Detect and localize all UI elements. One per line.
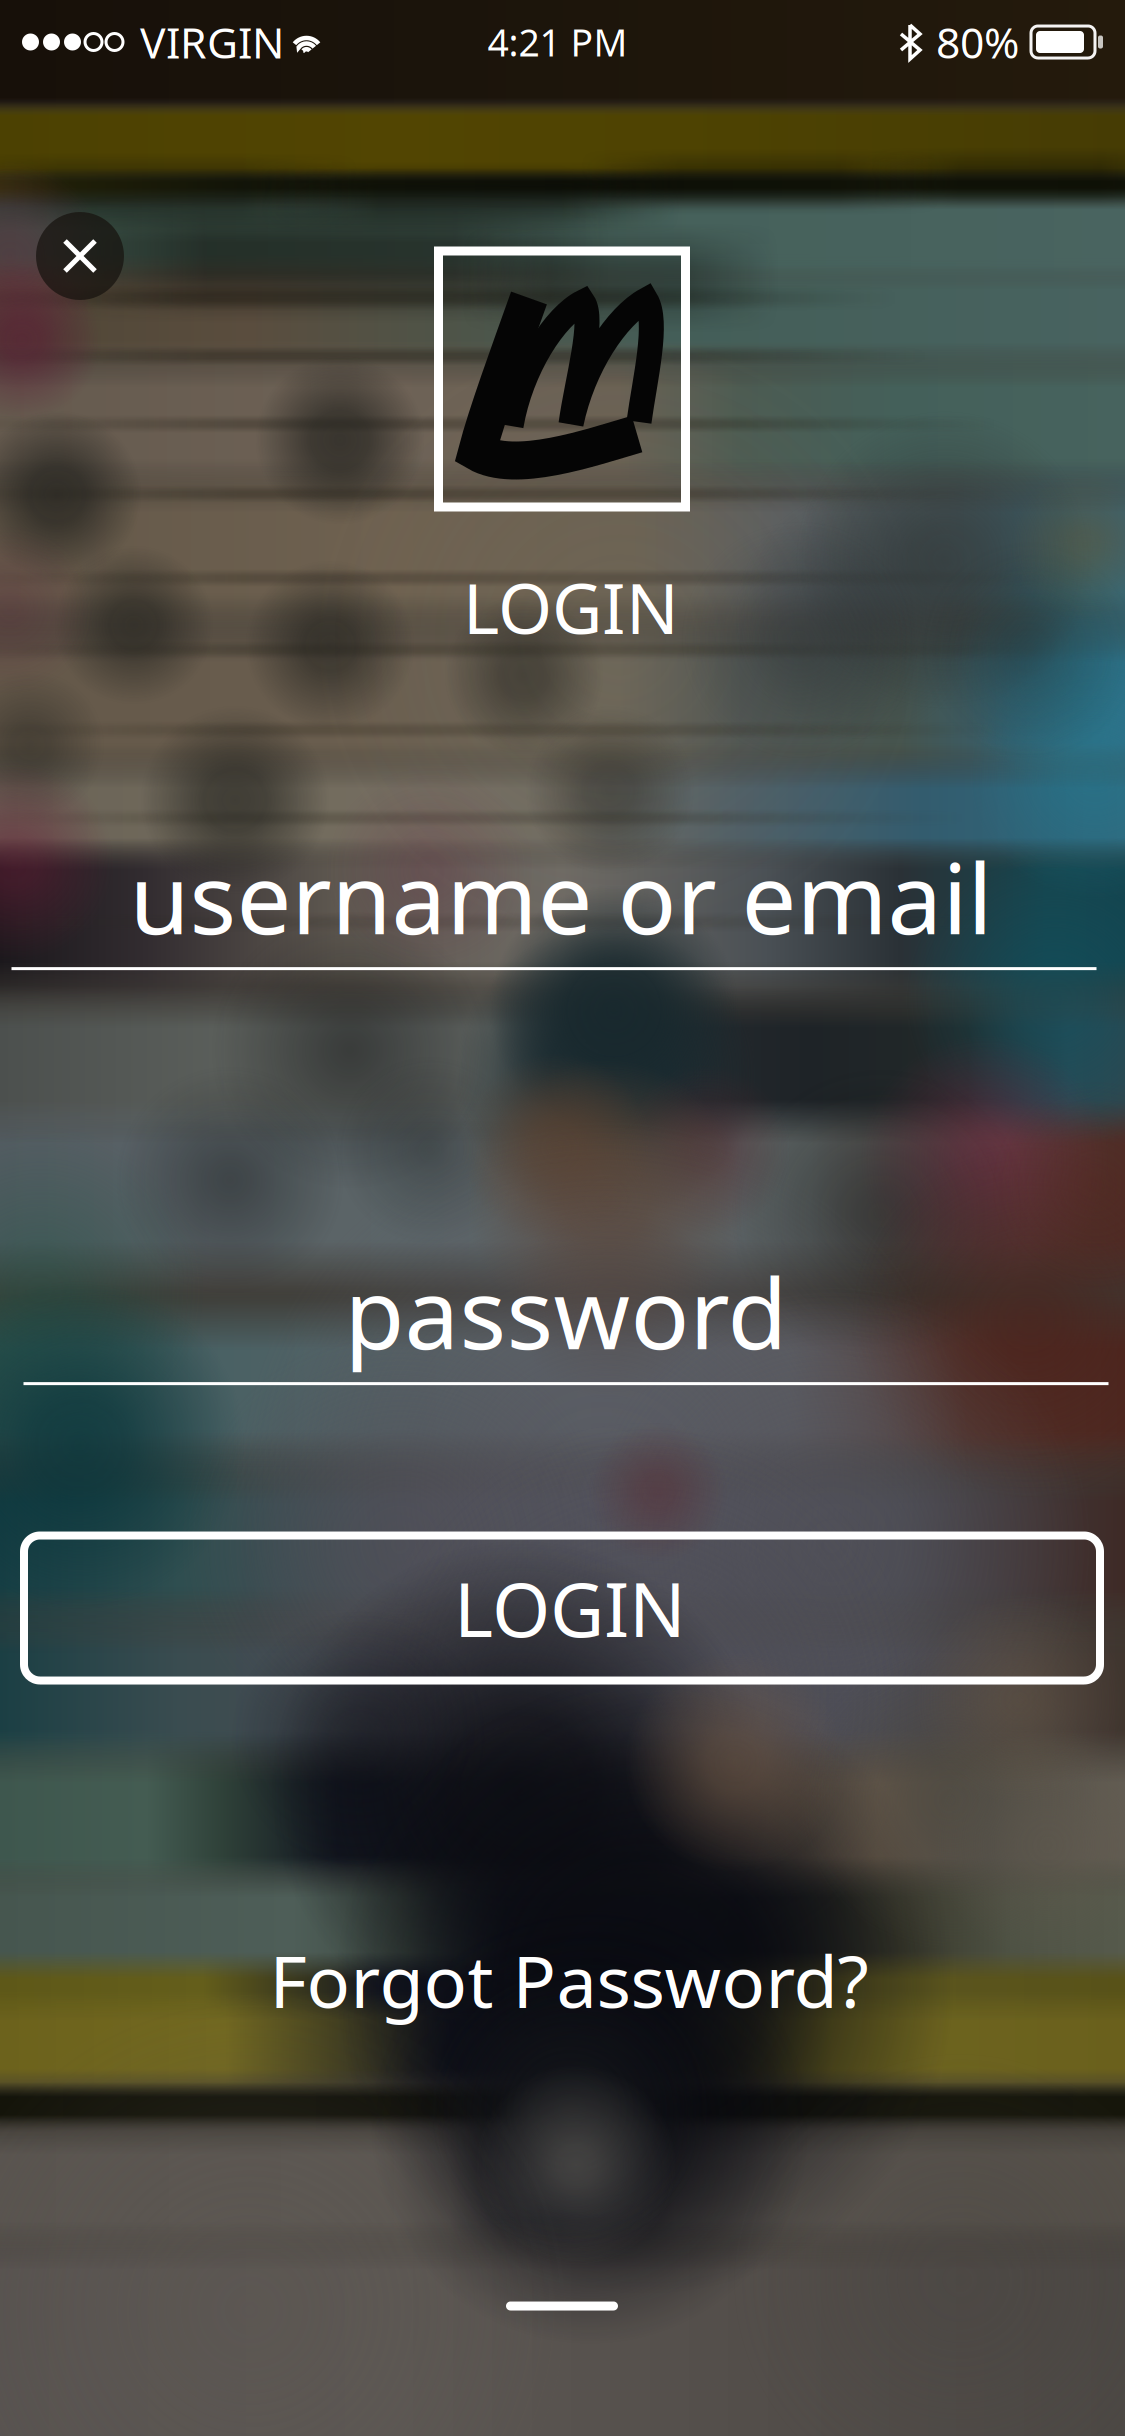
staticText: 80% <box>936 14 1019 70</box>
staticText: password <box>344 1247 787 1376</box>
staticText: VIRGIN <box>140 14 284 70</box>
button[interactable]: Forgot Password? <box>257 1922 880 2038</box>
button[interactable]: Close <box>36 212 124 300</box>
staticText: 4:21 PM <box>487 17 627 67</box>
staticText: LOGIN <box>454 1558 686 1658</box>
staticText: LOGIN <box>463 561 679 653</box>
staticText: username or email <box>129 832 992 961</box>
button[interactable]: LOGIN <box>24 1535 1100 1680</box>
staticText: Forgot Password? <box>269 1932 868 2028</box>
